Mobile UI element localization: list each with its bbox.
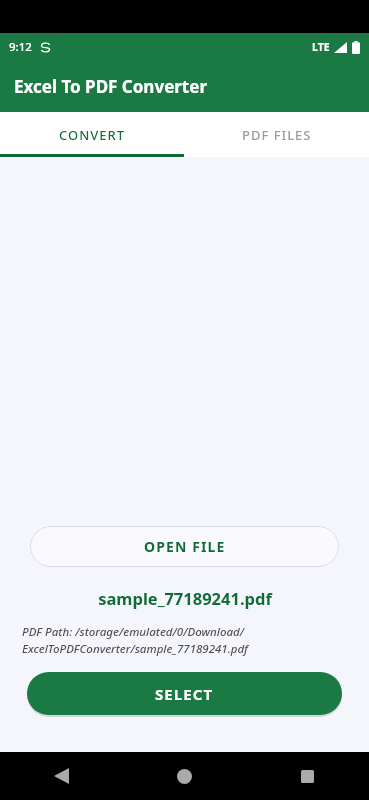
button[interactable]: Back <box>0 752 123 800</box>
staticText: 9:12 <box>9 39 32 55</box>
button[interactable]: OPEN FILE <box>30 526 339 567</box>
staticText: PDF FILES <box>242 126 312 144</box>
staticText: CONVERT <box>59 126 126 144</box>
button[interactable]: SELECT <box>27 672 342 715</box>
staticText: LTE <box>312 40 330 54</box>
staticText: PDF Path: /storage/emulated/0/Download/ … <box>22 624 359 656</box>
staticText: SELECT <box>155 684 214 704</box>
staticText: Excel To PDF Converter <box>14 75 208 98</box>
button[interactable]: Recent apps <box>246 752 369 800</box>
staticText: OPEN FILE <box>144 537 226 556</box>
button[interactable]: Home <box>123 752 246 800</box>
staticText: sample_77189241.pdf <box>98 587 272 609</box>
button[interactable]: CONVERT <box>0 112 184 157</box>
button[interactable]: PDF FILES <box>184 112 369 157</box>
